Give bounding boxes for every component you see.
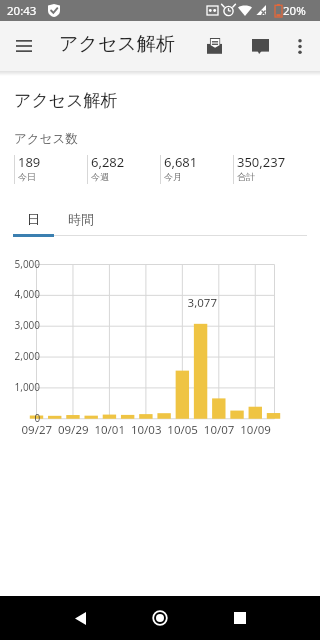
staticText: 20% — [283, 3, 306, 19]
button[interactable]: Navigation menu — [0, 22, 48, 70]
staticText: 時間 — [68, 211, 94, 227]
button[interactable]: 時間 — [54, 200, 108, 237]
staticText: 今週 — [91, 171, 109, 182]
staticText: 日 — [27, 211, 40, 227]
staticText: 今日 — [18, 171, 36, 182]
button[interactable]: 日 — [13, 200, 54, 237]
staticText: 6,681 — [164, 153, 198, 171]
staticText: アクセス解析 — [59, 32, 175, 56]
staticText: 合計 — [237, 171, 255, 182]
button[interactable]: Home — [145, 603, 175, 633]
button[interactable]: Back — [66, 604, 94, 632]
staticText: アクセス数 — [14, 131, 78, 147]
button[interactable]: Recent apps — [226, 604, 254, 632]
staticText: 189 — [18, 153, 41, 171]
staticText: アクセス解析 — [14, 90, 118, 111]
staticText: 350,237 — [237, 153, 286, 171]
button[interactable]: More options — [279, 25, 320, 67]
staticText: 6,282 — [91, 153, 125, 171]
button[interactable]: Comments — [239, 25, 281, 67]
staticText: 今月 — [164, 171, 182, 182]
button[interactable]: Inbox — [193, 25, 235, 67]
staticText: 20:43 — [7, 3, 37, 19]
